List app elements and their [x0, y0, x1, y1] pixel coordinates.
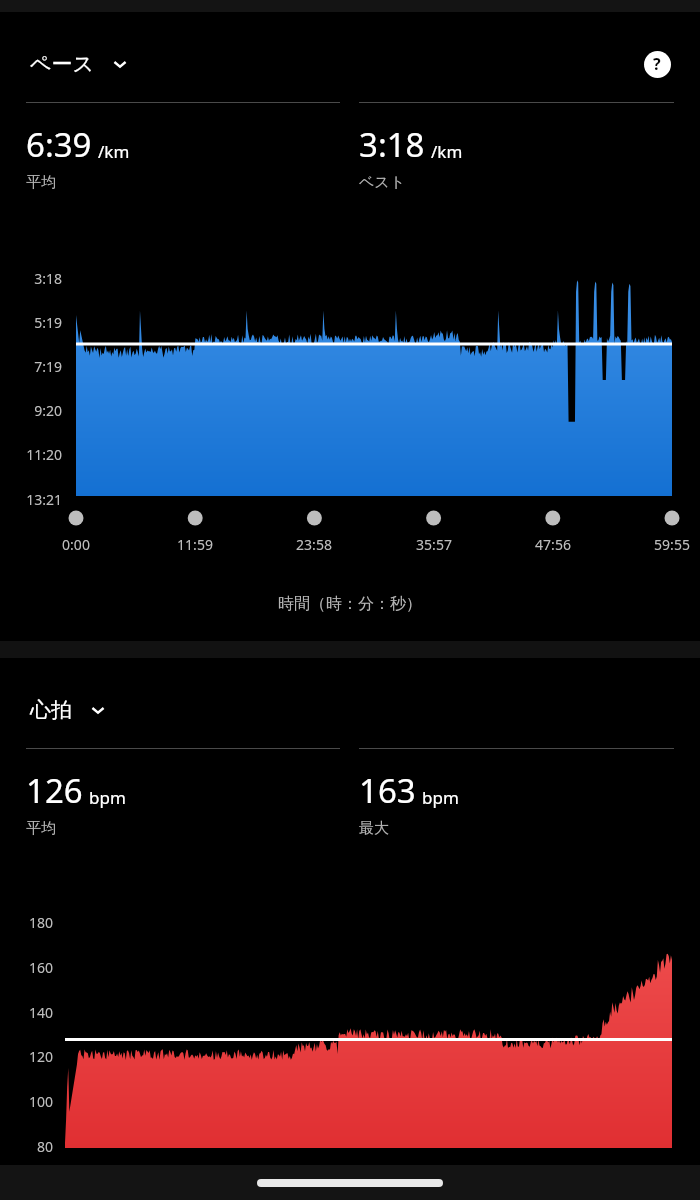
staticText: 平均	[26, 173, 56, 192]
staticText: 47:56	[513, 535, 593, 554]
staticText: 11:59	[155, 535, 235, 554]
staticText: 59:55	[632, 535, 700, 554]
staticText: bpm	[422, 786, 459, 809]
staticText: 最大	[359, 819, 389, 838]
staticText: 180	[0, 913, 53, 932]
staticText: 35:57	[394, 535, 474, 554]
staticText: 160	[0, 958, 53, 977]
staticText: /km	[431, 140, 463, 163]
staticText: 126	[26, 768, 83, 813]
staticText: 時間（時：分：秒）	[0, 594, 700, 614]
staticText: 11:20	[0, 445, 62, 464]
staticText: 100	[0, 1092, 53, 1111]
staticText: ベスト	[359, 173, 406, 192]
staticText: bpm	[89, 786, 126, 809]
staticText: 平均	[26, 819, 56, 838]
staticText: 6:39	[26, 122, 92, 167]
staticText: 80	[0, 1137, 53, 1156]
staticText: 9:20	[0, 401, 62, 420]
staticText: ?	[653, 53, 661, 75]
staticText: 120	[0, 1047, 53, 1066]
button[interactable]: ペース	[26, 45, 134, 83]
staticText: 140	[0, 1003, 53, 1022]
staticText: 163	[359, 768, 416, 813]
staticText: 3:18	[0, 269, 62, 288]
button[interactable]: 心拍	[26, 691, 112, 729]
staticText: 3:18	[359, 122, 425, 167]
staticText: 7:19	[0, 357, 62, 376]
staticText: 0:00	[36, 535, 116, 554]
staticText: 心拍	[30, 697, 72, 723]
staticText: 5:19	[0, 313, 62, 332]
staticText: ペース	[30, 51, 94, 77]
button[interactable]: Help	[640, 47, 674, 81]
staticText: /km	[98, 140, 130, 163]
staticText: 23:58	[274, 535, 354, 554]
staticText: 13:21	[0, 490, 62, 509]
